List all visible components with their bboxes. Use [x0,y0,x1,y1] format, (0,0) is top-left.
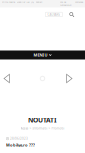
button[interactable]: Comanda [75,0,83,3]
button[interactable]: Previous slide [3,73,11,83]
staticText: MENIU [33,52,47,58]
button[interactable]: CAUTARE [45,12,62,17]
button[interactable]: Cos de cumparaturi [60,0,72,6]
staticText: (0) [31,0,34,3]
staticText: NOUTATI [28,115,57,124]
staticText: Contact [35,0,42,3]
staticText: 28/06/2023 [10,136,28,141]
staticText: Mobilya.ro ??? [6,142,35,147]
button[interactable]: MENIU [0,50,85,59]
staticText: Acasa > Informatii > Promotii [20,126,64,130]
staticText: Comanda [75,0,83,3]
staticText: CAUTARE [47,12,60,16]
button[interactable]: (0) [31,0,34,3]
staticText: Cos de cumparaturi [60,0,72,6]
button[interactable]: Mobilier Lux [16,0,29,3]
button[interactable]: Search [69,12,74,17]
button[interactable]: Next slide [65,73,73,83]
button[interactable]: Prima Pagina [2,0,15,3]
staticText: Mobilier Lux [16,0,29,3]
button[interactable]: Contact [35,0,42,3]
staticText: Prima Pagina [2,0,15,3]
